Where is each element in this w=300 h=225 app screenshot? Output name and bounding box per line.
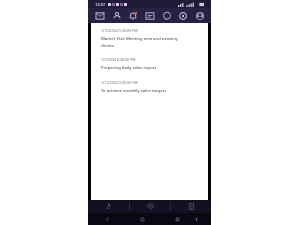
button[interactable]: Profile — [193, 9, 206, 22]
button[interactable]: Chat — [160, 9, 173, 22]
staticText: Preparing daily sales report — [101, 65, 182, 71]
staticText: 1/12/2024 5:00:00 PM — [101, 80, 138, 85]
button[interactable]: Home — [137, 214, 148, 225]
button[interactable]: 1/9/2024 6:30:00 PM — [101, 57, 200, 80]
button[interactable]: Back — [102, 214, 113, 225]
button[interactable]: Keyboard down — [191, 214, 202, 225]
button[interactable]: Favorites — [130, 200, 170, 213]
staticText: Market Visit Meeting new and existing cl… — [101, 36, 182, 48]
button[interactable]: Mail — [93, 9, 106, 22]
button[interactable]: Attendance — [88, 200, 129, 213]
button[interactable]: Contacts — [110, 9, 123, 22]
staticText: 1/9/2024 6:30:00 PM — [101, 57, 136, 62]
button[interactable]: Settings — [176, 9, 189, 22]
button[interactable]: 1/10/2024 5:30:00 PM — [101, 28, 200, 57]
button[interactable]: Tasks — [143, 9, 156, 22]
staticText: To achieve monthly sales targets — [101, 88, 182, 94]
button[interactable]: Notifications — [126, 9, 139, 22]
button[interactable]: Recents — [172, 214, 183, 225]
staticText: 12:07 — [95, 2, 106, 7]
staticText: 1/10/2024 5:30:00 PM — [101, 28, 138, 33]
button[interactable]: 1/12/2024 5:00:00 PM — [101, 80, 200, 103]
button[interactable]: Reports — [171, 200, 211, 213]
